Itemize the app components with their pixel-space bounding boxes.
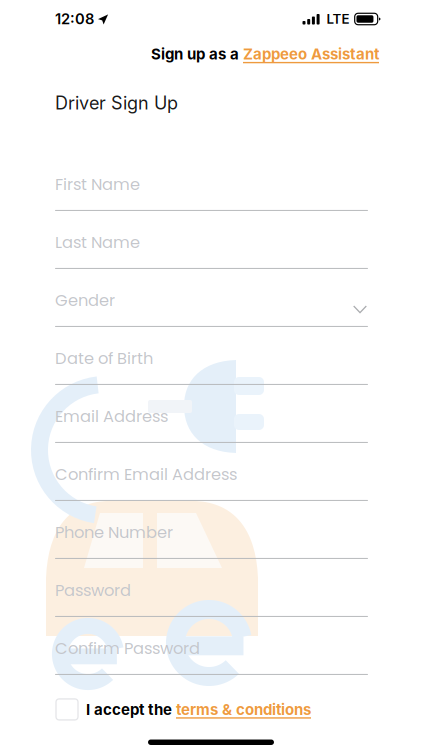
- staticText: Zappeeo Assistant: [243, 45, 379, 63]
- button[interactable]: Phone Number: [55, 506, 368, 564]
- button[interactable]: Password: [55, 564, 368, 622]
- staticText: First Name: [55, 173, 140, 196]
- button[interactable]: Date of Birth: [55, 332, 368, 390]
- staticText: LTE: [326, 11, 349, 27]
- button[interactable]: Confirm Email Address: [55, 448, 368, 506]
- staticText: Password: [55, 579, 131, 602]
- staticText: Date of Birth: [55, 347, 153, 370]
- button[interactable]: Email Address: [55, 390, 368, 448]
- button[interactable]: I accept the: [56, 699, 422, 720]
- staticText: Driver Sign Up: [55, 92, 178, 114]
- staticText: 12:08: [55, 10, 94, 28]
- button[interactable]: Last Name: [55, 216, 368, 274]
- staticText: Confirm Email Address: [55, 463, 237, 486]
- button[interactable]: Gender: [55, 274, 368, 332]
- button[interactable]: Sign up as a: [151, 45, 379, 63]
- staticText: Sign up as a: [151, 45, 239, 63]
- button[interactable]: First Name: [55, 158, 368, 216]
- staticText: I accept the: [86, 700, 172, 718]
- staticText: terms & conditions: [176, 700, 311, 718]
- staticText: Last Name: [55, 231, 140, 254]
- staticText: Confirm Password: [55, 637, 200, 660]
- staticText: Gender: [55, 289, 115, 312]
- button[interactable]: Confirm Password: [55, 622, 368, 680]
- staticText: Phone Number: [55, 521, 173, 544]
- staticText: Email Address: [55, 405, 168, 428]
